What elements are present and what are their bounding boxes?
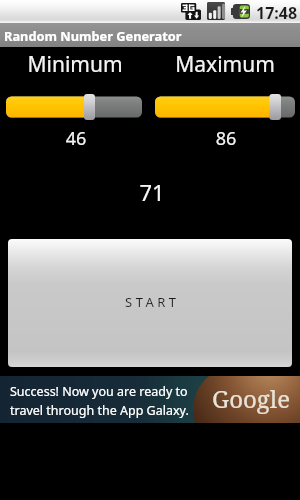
staticText: 71 [77, 177, 227, 207]
button[interactable]: Success! Now you are ready to [0, 376, 300, 423]
staticText: Success! Now you are ready to [10, 383, 188, 400]
staticText: 46 [1, 126, 151, 151]
staticText: 86 [151, 126, 300, 151]
staticText: Maximum [150, 50, 300, 79]
staticText: Google [212, 382, 291, 415]
button[interactable]: Slider [6, 94, 142, 120]
staticText: 17:48 [256, 2, 298, 24]
staticText: START [125, 293, 180, 311]
staticText: travel through the App Galaxy. [10, 402, 189, 419]
staticText: Random Number Generator [4, 27, 182, 44]
button[interactable]: START [8, 239, 292, 367]
staticText: Minimum [0, 50, 150, 79]
button[interactable]: Slider [155, 94, 295, 120]
